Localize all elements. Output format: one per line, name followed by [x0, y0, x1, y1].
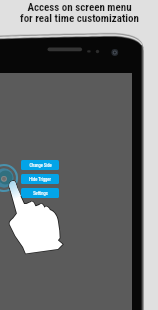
staticText: Access on screen menu for real time cust…: [20, 1, 139, 24]
staticText: Change Side: [29, 163, 52, 168]
staticText: Hide Trigger: [29, 177, 51, 182]
staticText: Settings: [33, 191, 48, 196]
button[interactable]: Hide Trigger: [21, 174, 59, 184]
button[interactable]: Settings: [21, 188, 59, 198]
button[interactable]: Change Side: [21, 160, 59, 170]
